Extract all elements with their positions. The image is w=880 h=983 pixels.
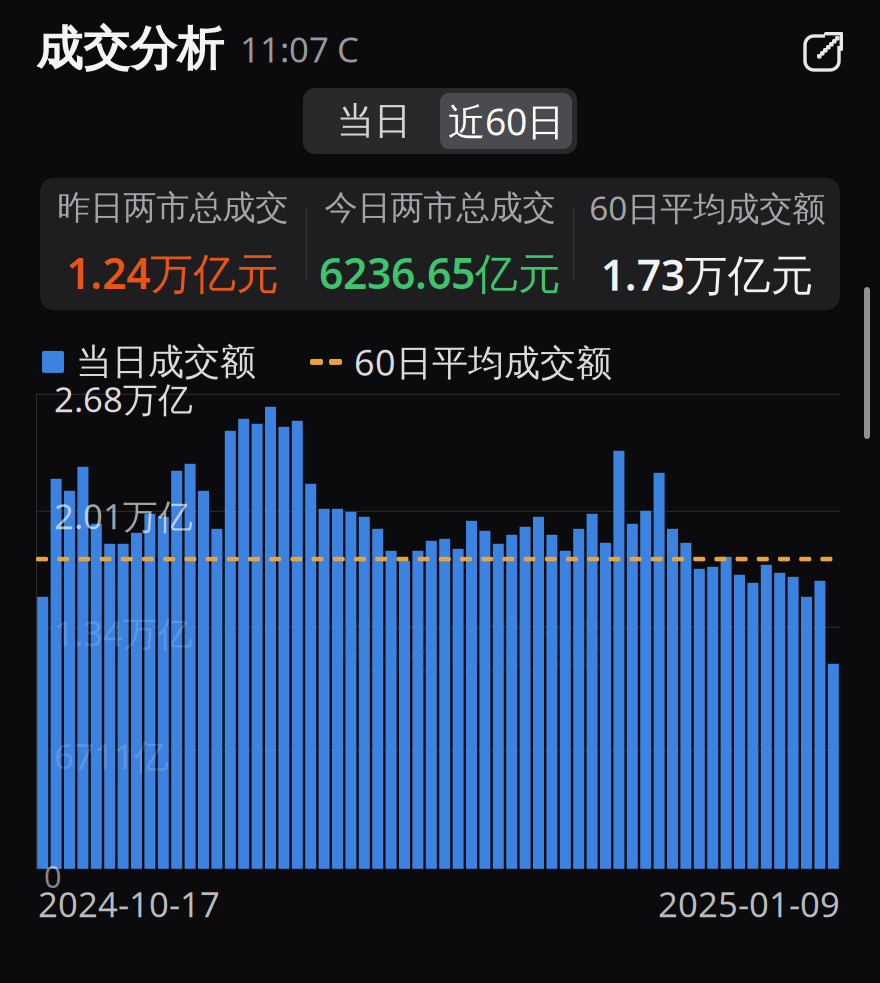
button[interactable]: 刷新 <box>329 18 367 80</box>
staticText: 11:07 <box>240 26 329 72</box>
button[interactable]: 分享 <box>800 22 854 76</box>
staticText: 60日平均成交额 <box>589 185 825 230</box>
staticText: 1.24万亿元 <box>66 244 279 301</box>
staticText: 1.73万亿元 <box>601 246 814 302</box>
staticText: 成交分析 <box>36 20 224 78</box>
staticText: 同花顺财经 <box>326 614 606 683</box>
staticText: 当日 <box>337 98 411 144</box>
button[interactable]: 近60日 <box>440 93 572 149</box>
staticText: 2.01万亿 <box>54 493 193 539</box>
button[interactable]: 当日 <box>308 93 440 149</box>
staticText: 近60日 <box>448 96 564 146</box>
staticText: 0 <box>44 856 62 896</box>
staticText: 2024-10-17 <box>38 881 220 927</box>
staticText: 今日两市总成交 <box>324 187 555 228</box>
staticText: 2.68万亿 <box>54 376 193 422</box>
staticText: 6236.65亿元 <box>319 244 561 301</box>
staticText: C <box>337 26 359 72</box>
staticText: 60日平均成交额 <box>354 338 612 386</box>
staticText: 当日成交额 <box>76 340 256 384</box>
staticText: 2025-01-09 <box>658 881 840 927</box>
staticText: 1.34万亿 <box>54 610 193 656</box>
staticText: 6711亿 <box>54 733 169 779</box>
staticText: 昨日两市总成交 <box>57 187 288 228</box>
